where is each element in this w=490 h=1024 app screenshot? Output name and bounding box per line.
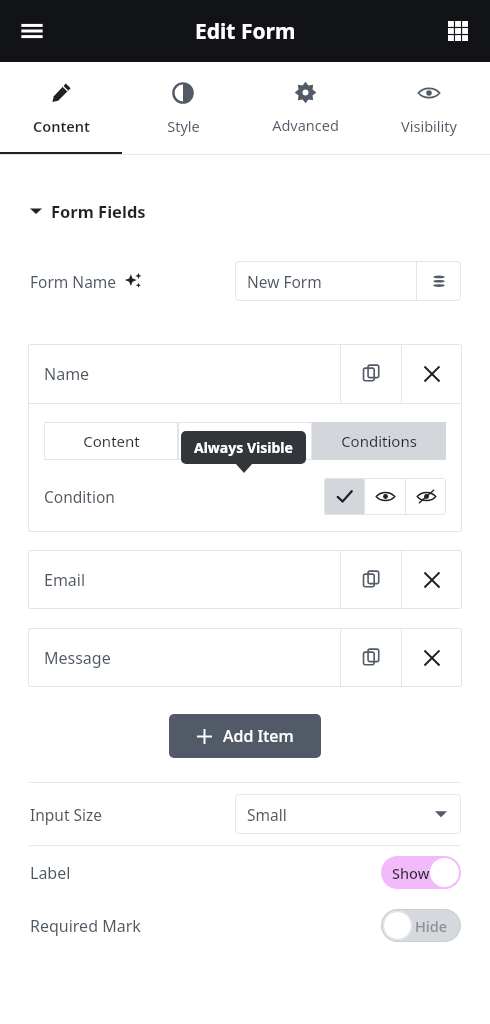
button[interactable]: Hide bbox=[406, 478, 446, 515]
button[interactable]: Show bbox=[381, 856, 461, 889]
button[interactable]: Add Item bbox=[169, 714, 321, 758]
staticText: Small bbox=[247, 804, 287, 825]
staticText: Form Fields bbox=[51, 200, 146, 222]
staticText: Show bbox=[392, 863, 430, 883]
button[interactable]: Advanced bbox=[244, 62, 367, 155]
staticText: Conditions bbox=[341, 431, 417, 451]
staticText: New Form bbox=[247, 271, 322, 292]
button[interactable]: Email bbox=[28, 550, 340, 609]
button[interactable]: Hide bbox=[381, 909, 461, 942]
staticText: Visibility bbox=[401, 116, 457, 136]
button[interactable]: Content bbox=[0, 62, 122, 155]
button[interactable]: Visibility bbox=[367, 62, 490, 155]
staticText: Always Visible bbox=[194, 438, 293, 457]
staticText: Content bbox=[83, 431, 140, 451]
staticText: Form Name bbox=[30, 271, 117, 292]
staticText: Style bbox=[167, 116, 200, 136]
staticText: Email bbox=[44, 569, 86, 591]
staticText: Input Size bbox=[30, 804, 103, 825]
button[interactable]: Duplicate Name bbox=[341, 344, 401, 403]
button[interactable]: Dynamic tags bbox=[417, 261, 461, 301]
button[interactable]: Style bbox=[122, 62, 244, 155]
button[interactable]: Content bbox=[44, 422, 178, 460]
staticText: Advanced bbox=[272, 115, 339, 135]
staticText: Edit Form bbox=[195, 17, 296, 46]
staticText: Advanced bbox=[210, 431, 280, 451]
staticText: Add Item bbox=[223, 725, 294, 747]
button[interactable]: Menu bbox=[10, 9, 54, 53]
staticText: Required Mark bbox=[30, 915, 141, 937]
button[interactable]: Remove Email bbox=[402, 550, 462, 609]
staticText: Condition bbox=[44, 486, 115, 507]
button[interactable]: Conditions bbox=[312, 422, 446, 460]
staticText: Name bbox=[44, 363, 90, 385]
button[interactable]: Remove Message bbox=[402, 628, 462, 687]
button[interactable]: Duplicate Message bbox=[341, 628, 401, 687]
button[interactable]: Show bbox=[365, 478, 405, 515]
button[interactable]: Duplicate Email bbox=[341, 550, 401, 609]
staticText: Message bbox=[44, 647, 111, 669]
button[interactable]: Advanced bbox=[178, 422, 312, 460]
button[interactable]: Remove Name bbox=[402, 344, 462, 403]
button[interactable]: Small bbox=[235, 794, 461, 834]
button[interactable]: Name bbox=[28, 344, 340, 403]
button[interactable]: Form Fields bbox=[0, 200, 490, 222]
button[interactable]: New Form bbox=[235, 261, 416, 301]
button[interactable]: Always visible bbox=[324, 478, 364, 515]
button[interactable]: Apps bbox=[436, 9, 480, 53]
button[interactable]: Message bbox=[28, 628, 340, 687]
staticText: Hide bbox=[415, 916, 448, 936]
staticText: Content bbox=[33, 116, 90, 136]
staticText: Label bbox=[30, 862, 71, 884]
